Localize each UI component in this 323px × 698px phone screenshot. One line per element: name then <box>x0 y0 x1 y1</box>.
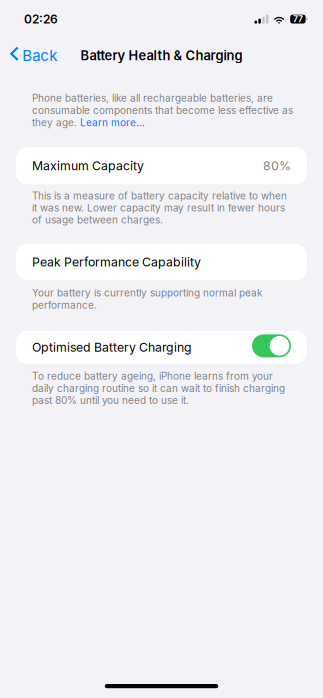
staticText: 80% <box>263 158 291 173</box>
staticText: Optimised Battery Charging <box>32 340 192 355</box>
button[interactable]: Peak Performance Capability <box>0 244 323 280</box>
staticText: Maximum Capacity <box>32 158 144 173</box>
staticText: Learn more… <box>80 116 145 129</box>
staticText: Your battery is currently supporting nor… <box>32 287 262 311</box>
staticText: To reduce battery ageing, iPhone learns … <box>32 370 285 406</box>
button[interactable]: Optimised Battery Charging <box>252 334 291 357</box>
staticText: they age. <box>32 116 80 129</box>
staticText: Phone batteries, like all rechargeable b… <box>32 92 273 104</box>
staticText: Peak Performance Capability <box>32 255 201 269</box>
button[interactable]: Learn more… <box>80 116 145 129</box>
staticText: consumable components that become less e… <box>32 104 293 116</box>
button[interactable]: Back <box>0 41 67 70</box>
staticText: This is a measure of battery capacity re… <box>32 190 287 226</box>
staticText: 77 <box>293 14 303 24</box>
staticText: 02:26 <box>24 12 58 26</box>
staticText: Back <box>22 46 57 64</box>
staticText: Battery Health & Charging <box>80 48 242 63</box>
